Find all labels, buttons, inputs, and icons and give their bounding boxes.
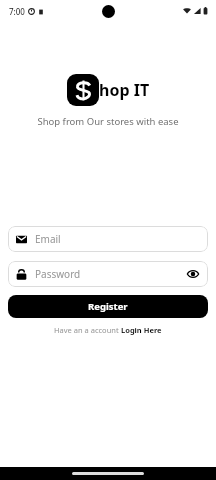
staticText: 7:00 [9,6,25,17]
staticText: Register [88,300,128,313]
button[interactable]: Password [8,261,208,287]
button[interactable]: Login Here [121,325,162,335]
staticText: Email [35,232,61,246]
staticText: hop IT [99,79,150,101]
staticText: Have an a account [54,325,121,335]
staticText: Password [35,267,186,281]
button[interactable]: Show password [186,267,200,281]
staticText: Shop from Our stores with ease [37,115,179,128]
staticText: Login Here [121,325,162,335]
button[interactable]: Register [8,295,208,318]
button[interactable]: Email [8,226,208,252]
